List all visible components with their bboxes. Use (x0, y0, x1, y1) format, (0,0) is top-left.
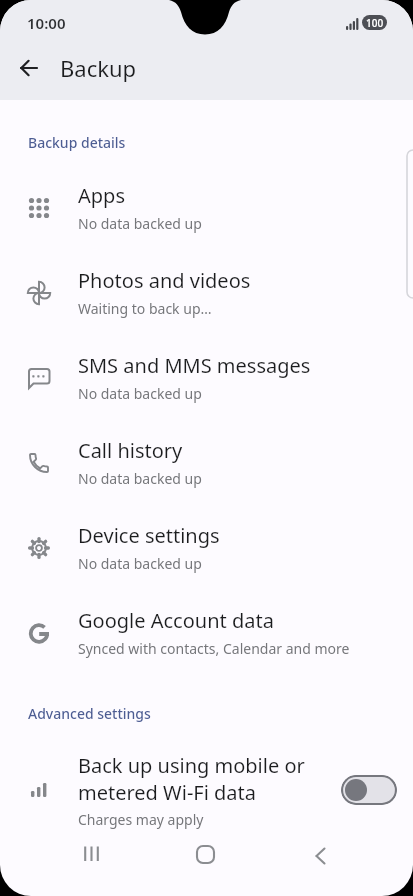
button[interactable]: Device settings (0, 505, 413, 590)
staticText: Device settings (78, 522, 220, 549)
button[interactable] (10, 49, 48, 87)
staticText: 100 (366, 16, 384, 30)
button[interactable]: Call history (0, 420, 413, 505)
staticText: Charges may apply (78, 810, 204, 829)
button[interactable] (74, 836, 110, 872)
staticText: No data backed up (78, 469, 202, 488)
staticText: Apps (78, 182, 125, 209)
staticText: Backup (60, 53, 137, 83)
staticText: No data backed up (78, 214, 202, 233)
staticText: SMS and MMS messages (78, 352, 311, 379)
button[interactable]: Back up using mobile or metered Wi-Fi da… (0, 748, 413, 832)
button[interactable] (187, 836, 223, 872)
staticText: Photos and videos (78, 267, 251, 294)
staticText: Waiting to back up… (78, 299, 212, 318)
button[interactable] (341, 775, 397, 805)
staticText: Back up using mobile or metered Wi-Fi da… (78, 752, 305, 806)
button[interactable]: Photos and videos (0, 250, 413, 335)
staticText: Synced with contacts, Calendar and more (78, 639, 350, 658)
staticText: No data backed up (78, 384, 202, 403)
button[interactable]: Google Account data (0, 590, 413, 675)
staticText: Backup details (28, 133, 126, 152)
staticText: No data backed up (78, 554, 202, 573)
staticText: Call history (78, 437, 183, 464)
staticText: Google Account data (78, 607, 274, 634)
staticText: Advanced settings (28, 704, 151, 723)
staticText: 10:00 (27, 13, 66, 33)
button[interactable]: Apps (0, 165, 413, 250)
button[interactable]: SMS and MMS messages (0, 335, 413, 420)
button[interactable] (302, 836, 338, 872)
